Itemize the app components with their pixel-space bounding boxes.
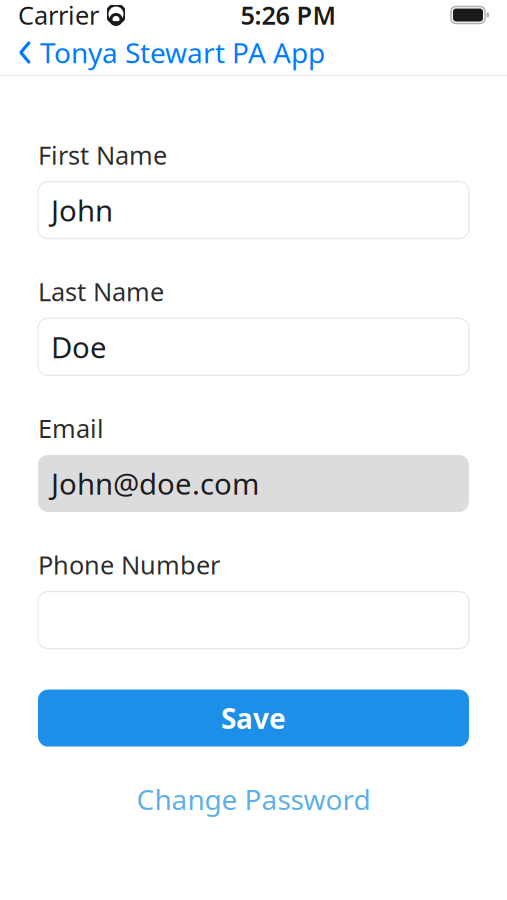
- staticText: Phone Number: [38, 548, 220, 581]
- button[interactable]: Save: [38, 690, 469, 747]
- button[interactable]: Tonya Stewart PA App: [0, 26, 325, 79]
- staticText: John@doe.com: [51, 464, 259, 503]
- staticText: Email: [38, 411, 104, 445]
- staticText: 5:26 PM: [240, 0, 336, 32]
- staticText: Tonya Stewart PA App: [40, 34, 325, 71]
- staticText: Carrier: [18, 0, 99, 32]
- staticText: Doe: [51, 327, 107, 366]
- staticText: John: [51, 191, 113, 230]
- staticText: First Name: [38, 138, 167, 172]
- staticText: Save: [221, 699, 286, 737]
- button[interactable]: Change Password: [38, 773, 469, 826]
- staticText: Last Name: [38, 275, 164, 308]
- staticText: Change Password: [136, 781, 370, 818]
